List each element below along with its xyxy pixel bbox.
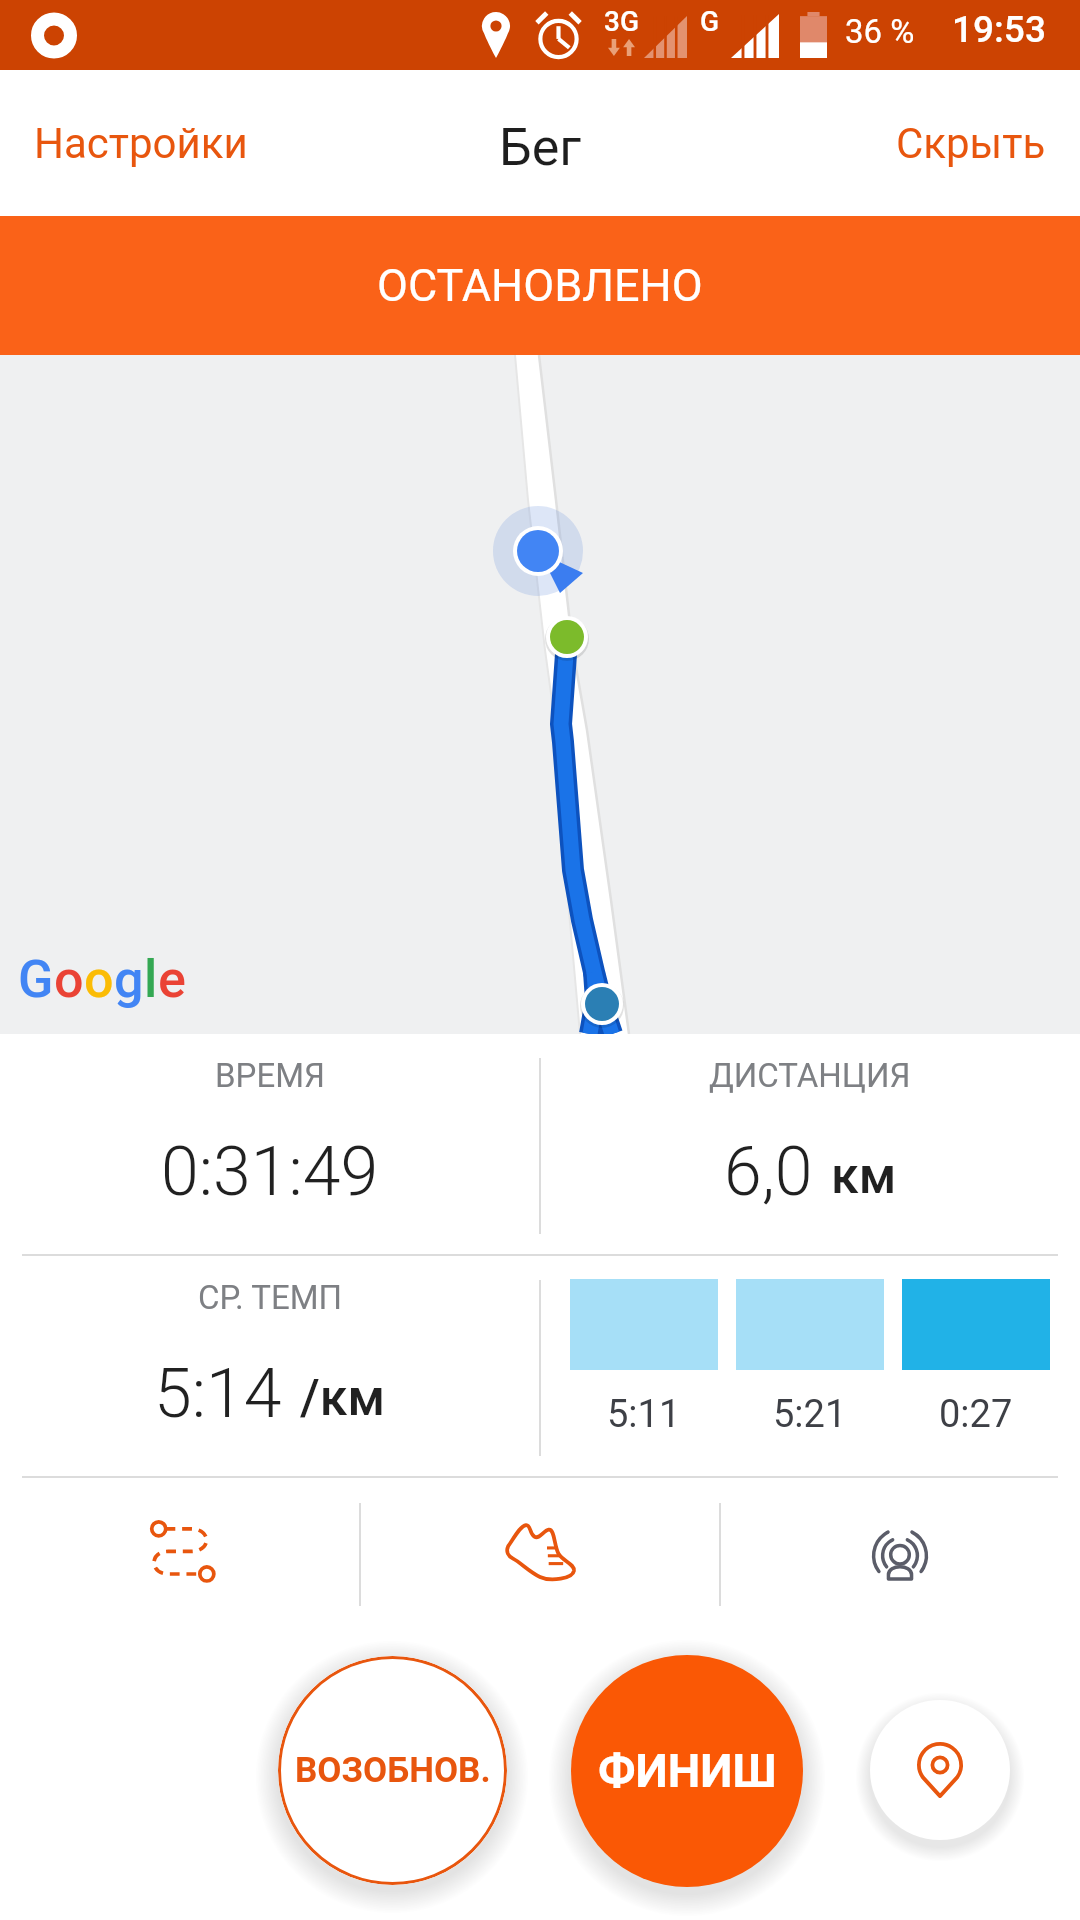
staticText: Бег [499,117,582,178]
staticText: G [18,949,54,1010]
staticText: 5:11 [607,1392,681,1437]
staticText: /км [300,1369,386,1428]
staticText: 0:27 [939,1392,1013,1437]
staticText: ФИНИШ [598,1744,777,1798]
button[interactable]: ФИНИШ [571,1655,803,1887]
staticText: G [700,5,720,38]
staticText: ВОЗОБНОВ. [295,1750,491,1791]
staticText: l [144,949,158,1010]
staticText: g [114,949,144,1010]
staticText: ОСТАНОВЛЕНО [377,259,703,312]
staticText: Настройки [34,119,248,168]
button[interactable]: ВОЗОБНОВ. [278,1656,507,1885]
staticText: 6,0 [724,1132,813,1212]
button[interactable]: Shoes [360,1478,720,1638]
button[interactable]: Route [0,1478,360,1638]
button[interactable]: Скрыть [862,85,1080,202]
staticText: Скрыть [896,119,1046,168]
staticText: 5:21 [773,1392,847,1437]
staticText: e [158,949,186,1010]
staticText: 3G [604,5,639,38]
staticText: o [84,949,114,1010]
button[interactable]: Center map [870,1700,1010,1840]
staticText: ВРЕМЯ [215,1056,325,1095]
button[interactable]: Настройки [0,85,282,202]
staticText: СР. ТЕМП [198,1278,343,1317]
staticText: 36 % [845,12,915,51]
staticText: ДИСТАНЦИЯ [709,1056,911,1095]
staticText: км [831,1147,897,1206]
staticText: 19:53 [952,8,1046,51]
staticText: 0:31:49 [161,1132,379,1212]
staticText: o [54,949,84,1010]
button[interactable]: Live tracking [720,1478,1080,1638]
staticText: 5:14 [154,1354,282,1434]
